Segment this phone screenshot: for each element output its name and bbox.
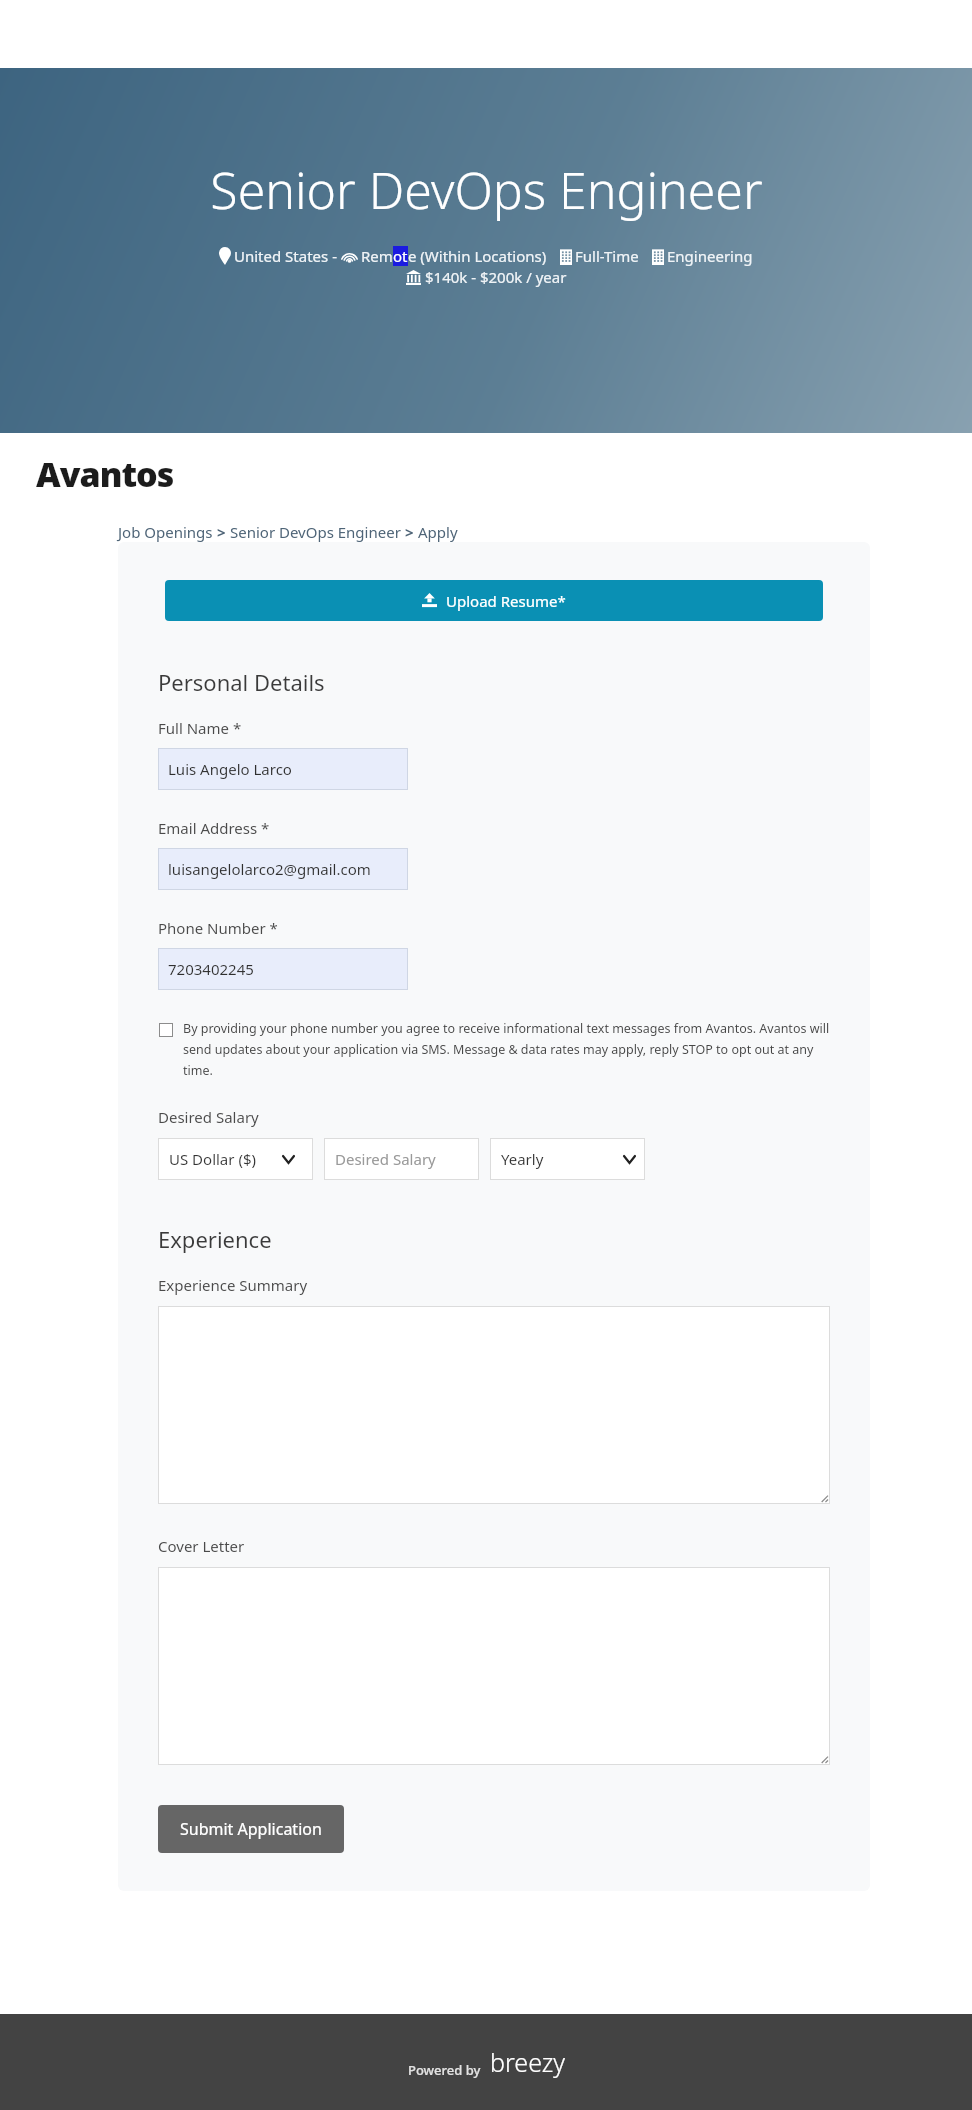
button[interactable]: Senior DevOps Engineer: [230, 522, 401, 542]
staticText: Powered by: [408, 2061, 481, 2079]
button[interactable]: [158, 1306, 830, 1504]
button[interactable]: US Dollar ($): [158, 1138, 313, 1180]
staticText: luisangelolarco2@gmail.com: [168, 859, 371, 879]
staticText: Phone Number *: [158, 918, 278, 938]
staticText: Experience Summary: [158, 1275, 308, 1295]
button[interactable]: luisangelolarco2@gmail.com: [158, 848, 408, 890]
staticText: Submit Application: [180, 1818, 322, 1840]
other: SMS consent checkbox: [159, 1023, 173, 1037]
staticText: Cover Letter: [158, 1536, 245, 1556]
staticText: Experience: [158, 1224, 272, 1254]
button[interactable]: 7203402245: [158, 948, 408, 990]
staticText: e (Within Locations): [408, 246, 547, 266]
staticText: United States -: [234, 246, 341, 266]
staticText: Yearly: [501, 1149, 544, 1169]
button[interactable]: Job Openings: [118, 522, 213, 542]
button[interactable]: Luis Angelo Larco: [158, 748, 408, 790]
staticText: >: [213, 522, 230, 542]
button[interactable]: Desired Salary: [324, 1138, 479, 1180]
staticText: >: [401, 522, 418, 542]
button[interactable]: SMS consent checkbox: [158, 1020, 830, 1079]
staticText: Senior DevOps Engineer: [210, 156, 763, 224]
staticText: US Dollar ($): [169, 1149, 256, 1169]
other: Open dropdown: [283, 1156, 294, 1163]
staticText: Desired Salary: [335, 1149, 436, 1169]
button[interactable]: [158, 1567, 830, 1765]
staticText: Engineering: [667, 246, 753, 266]
button[interactable]: Submit Application: [158, 1805, 344, 1853]
staticText: 7203402245: [168, 959, 254, 979]
staticText: $140k - $200k / year: [425, 267, 567, 287]
staticText: Luis Angelo Larco: [168, 759, 292, 779]
staticText: Rem: [361, 246, 393, 266]
staticText: Desired Salary: [158, 1107, 259, 1127]
staticText: ot: [393, 246, 408, 266]
staticText: By providing your phone number you agree…: [183, 1020, 830, 1079]
button[interactable]: Yearly: [490, 1138, 645, 1180]
staticText: Avantos: [36, 451, 174, 497]
staticText: Apply: [418, 522, 458, 542]
staticText: Email Address *: [158, 818, 270, 838]
button[interactable]: breezy: [490, 2045, 565, 2079]
staticText: Full-Time: [575, 246, 639, 266]
button[interactable]: Upload Resume*: [165, 580, 823, 621]
staticText: Personal Details: [158, 667, 325, 697]
staticText: Full Name *: [158, 718, 242, 738]
staticText: Upload Resume*: [446, 591, 566, 611]
other: Open dropdown: [624, 1156, 635, 1163]
